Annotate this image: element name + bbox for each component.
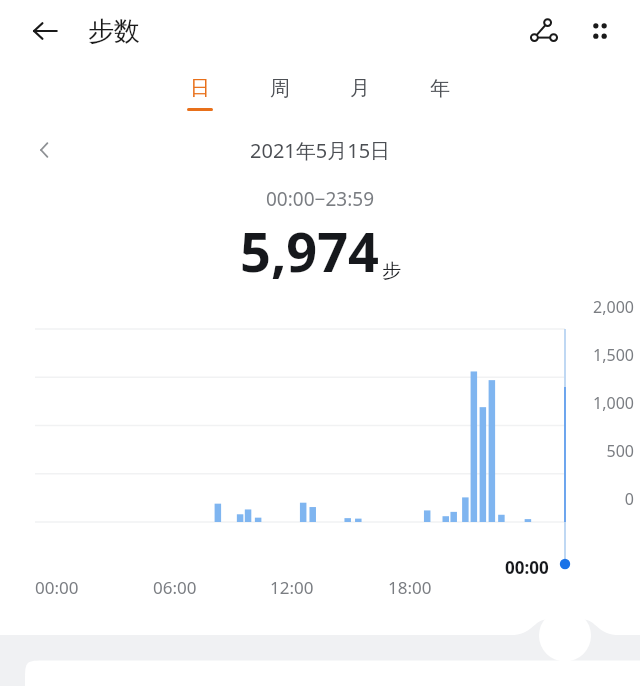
button[interactable]: Back — [22, 8, 68, 54]
staticText: 1,500 — [593, 344, 634, 366]
button[interactable]: 周 — [240, 64, 320, 122]
staticText: 步 — [382, 259, 401, 283]
button[interactable]: More options — [576, 7, 624, 55]
staticText: 周 — [270, 76, 290, 101]
staticText: 00:00 — [505, 556, 549, 579]
staticText: 月 — [350, 76, 370, 101]
button[interactable]: Share — [520, 7, 568, 55]
staticText: 0 — [624, 488, 634, 510]
button[interactable]: Scrubber handle — [538, 622, 590, 674]
button[interactable]: 月 — [320, 64, 400, 122]
staticText: 00:00 — [35, 576, 79, 599]
button[interactable]: Previous day — [24, 129, 66, 171]
staticText: 18:00 — [388, 576, 432, 599]
staticText: 年 — [430, 76, 450, 101]
staticText: 2021年5月15日 — [250, 137, 391, 164]
staticText: 500 — [606, 440, 634, 462]
staticText: 2,000 — [593, 296, 634, 318]
staticText: 步数 — [88, 15, 140, 48]
staticText: 1,000 — [593, 392, 634, 414]
staticText: 06:00 — [153, 576, 197, 599]
staticText: 日 — [190, 76, 210, 101]
staticText: 00:00−23:59 — [266, 186, 374, 212]
staticText: 5,974 — [240, 214, 379, 288]
button[interactable]: 年 — [400, 64, 480, 122]
button[interactable]: 日 — [160, 64, 240, 122]
staticText: 12:00 — [270, 576, 314, 599]
